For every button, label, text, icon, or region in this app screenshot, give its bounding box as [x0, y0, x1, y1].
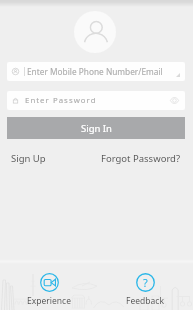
- button[interactable]: Show password: [170, 96, 179, 105]
- other: Feedback: [136, 273, 155, 292]
- button[interactable]: Feedback: [119, 273, 171, 307]
- button[interactable]: Sign Up: [9, 150, 48, 167]
- staticText: Sign In: [81, 122, 112, 135]
- button[interactable]: Experience: [23, 273, 75, 307]
- staticText: Enter Mobile Phone Number/Email: [27, 66, 163, 77]
- staticText: Sign Up: [11, 152, 46, 165]
- button[interactable]: Sign In: [7, 117, 185, 139]
- staticText: Forgot Password?: [101, 152, 181, 165]
- staticText: Feedback: [126, 295, 164, 307]
- button[interactable]: Enter Mobile Phone Number/Email: [7, 62, 185, 81]
- button[interactable]: Forgot Password?: [99, 150, 183, 167]
- staticText: ?: [143, 275, 148, 290]
- other: Experience: [40, 273, 59, 292]
- staticText: Experience: [27, 295, 71, 307]
- button[interactable]: Enter Password: [7, 91, 185, 110]
- staticText: Enter Password: [25, 95, 97, 106]
